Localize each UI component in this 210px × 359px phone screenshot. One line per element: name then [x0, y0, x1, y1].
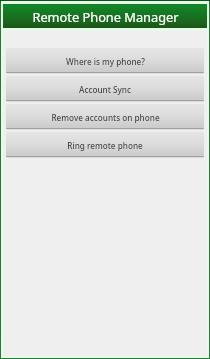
staticText: Account Sync — [79, 84, 131, 95]
staticText: Ring remote phone — [67, 140, 143, 151]
staticText: Where is my phone? — [66, 56, 145, 67]
button[interactable]: Remove accounts on phone — [6, 104, 204, 130]
button[interactable]: Ring remote phone — [6, 132, 204, 158]
staticText: Remote Phone Manager — [32, 8, 179, 25]
button[interactable]: Where is my phone? — [6, 48, 204, 74]
staticText: Remove accounts on phone — [51, 112, 160, 123]
button[interactable]: Account Sync — [6, 76, 204, 102]
